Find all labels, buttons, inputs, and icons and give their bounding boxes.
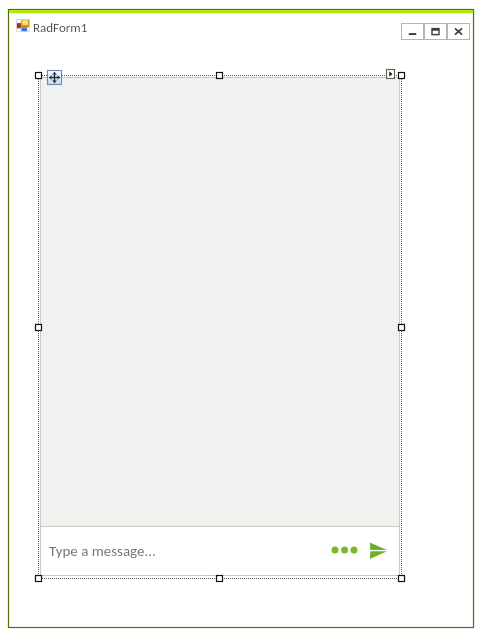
button[interactable]: Move control bbox=[47, 70, 62, 85]
button[interactable]: More options bbox=[328, 540, 352, 560]
button[interactable]: Maximize bbox=[424, 23, 447, 40]
button[interactable]: Send bbox=[368, 540, 390, 562]
staticText: RadForm1 bbox=[33, 20, 88, 36]
button[interactable]: Close bbox=[447, 23, 470, 40]
staticText: Type a message... bbox=[49, 542, 156, 560]
button[interactable]: Type a message... bbox=[40, 77, 400, 576]
button[interactable]: Smart tag actions bbox=[386, 69, 395, 79]
button[interactable]: Minimize bbox=[401, 23, 424, 40]
